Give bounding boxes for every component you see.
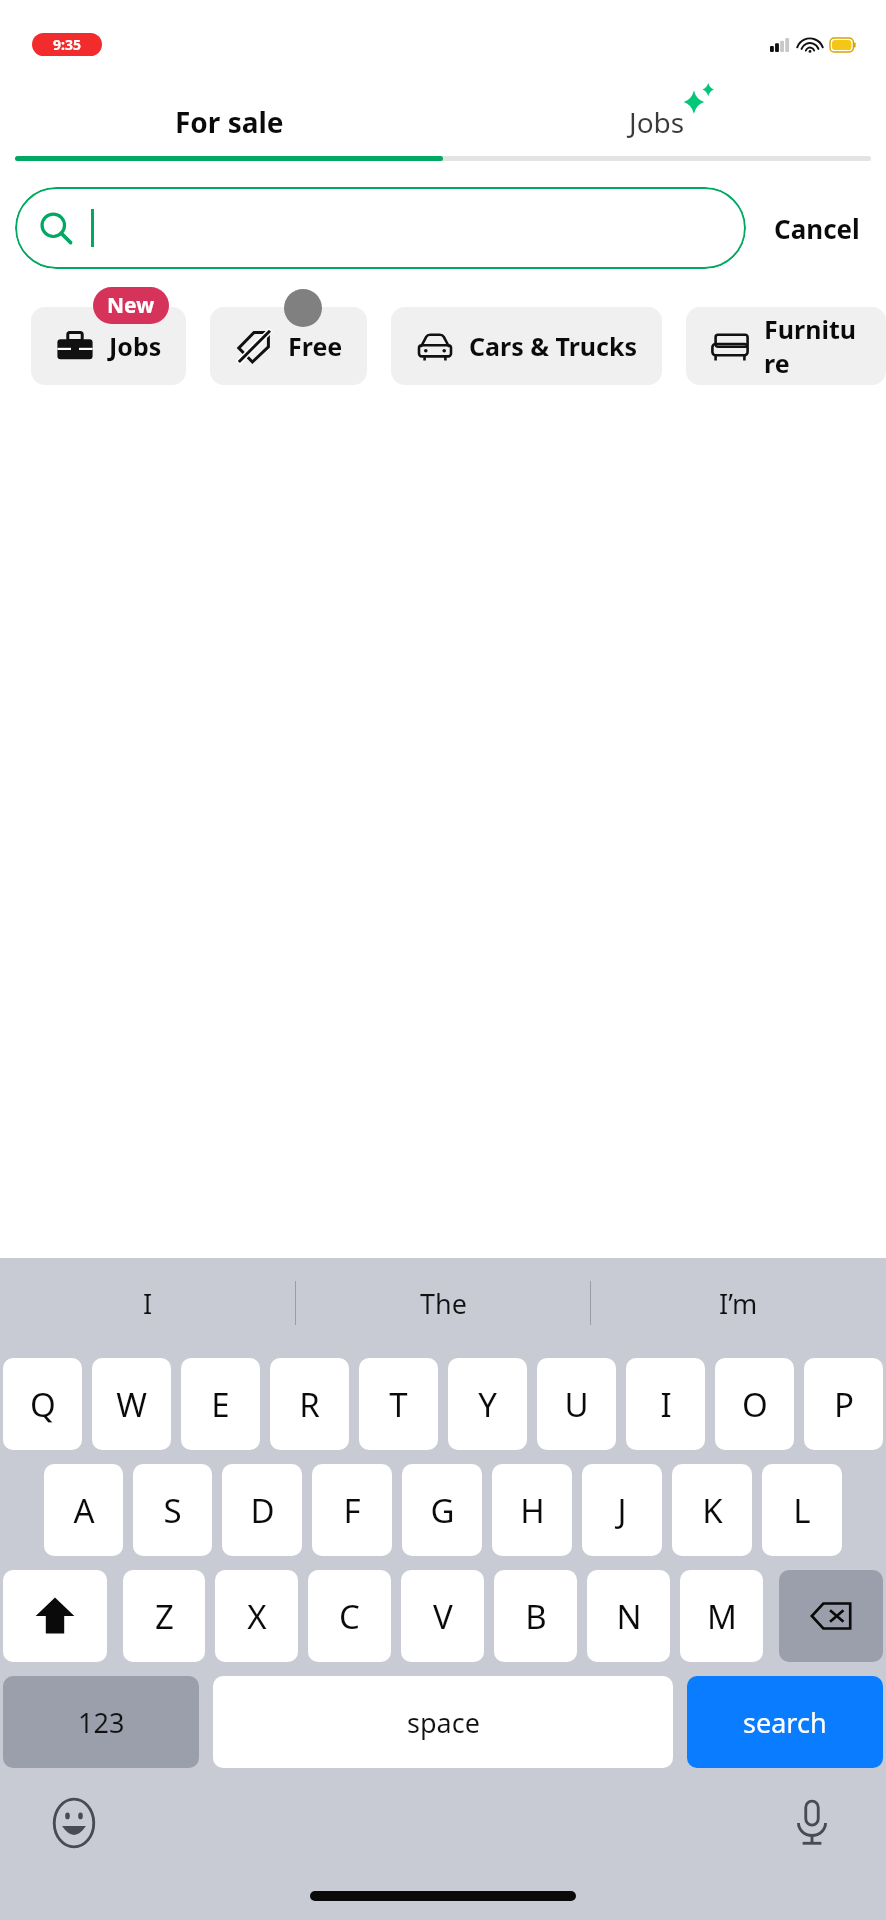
button[interactable]: 123 bbox=[3, 1676, 199, 1768]
staticText: K bbox=[702, 1488, 723, 1533]
staticText: T bbox=[389, 1382, 408, 1427]
button[interactable]: P bbox=[804, 1358, 883, 1450]
button[interactable]: space bbox=[213, 1676, 673, 1768]
button[interactable]: K bbox=[672, 1464, 752, 1556]
staticText: V bbox=[433, 1594, 453, 1639]
staticText: M bbox=[707, 1594, 737, 1639]
staticText: S bbox=[163, 1488, 182, 1533]
button[interactable]: T bbox=[359, 1358, 438, 1450]
staticText: A bbox=[73, 1488, 95, 1533]
staticText: Q bbox=[30, 1382, 56, 1427]
staticText: C bbox=[339, 1594, 360, 1639]
button[interactable]: Furniture bbox=[686, 307, 886, 385]
staticText: The bbox=[420, 1285, 467, 1322]
button[interactable]: L bbox=[762, 1464, 842, 1556]
button[interactable]: Jobs bbox=[31, 307, 186, 385]
button[interactable]: The bbox=[296, 1258, 591, 1348]
staticText: L bbox=[793, 1488, 811, 1533]
button[interactable]: O bbox=[715, 1358, 794, 1450]
staticText: space bbox=[407, 1704, 480, 1741]
button[interactable]: Cars & Trucks bbox=[391, 307, 662, 385]
button[interactable]: U bbox=[537, 1358, 616, 1450]
button[interactable]: Q bbox=[3, 1358, 82, 1450]
staticText: I’m bbox=[719, 1285, 758, 1322]
button[interactable]: N bbox=[587, 1570, 670, 1662]
button[interactable]: Y bbox=[448, 1358, 527, 1450]
staticText: Y bbox=[478, 1382, 497, 1427]
button[interactable]: C bbox=[308, 1570, 391, 1662]
button[interactable]: Emoji bbox=[46, 1795, 102, 1851]
button[interactable]: F bbox=[312, 1464, 392, 1556]
staticText: Jobs bbox=[629, 103, 685, 141]
staticText: Cancel bbox=[774, 211, 860, 246]
staticText: G bbox=[430, 1488, 455, 1533]
button[interactable]: W bbox=[92, 1358, 171, 1450]
button[interactable]: M bbox=[680, 1570, 763, 1662]
button[interactable]: For sale bbox=[15, 88, 443, 156]
button[interactable]: I bbox=[0, 1258, 296, 1348]
staticText: B bbox=[525, 1594, 547, 1639]
button[interactable]: D bbox=[222, 1464, 302, 1556]
staticText: E bbox=[211, 1382, 230, 1427]
button[interactable]: G bbox=[402, 1464, 482, 1556]
button[interactable]: I’m bbox=[591, 1258, 886, 1348]
staticText: Free bbox=[288, 329, 343, 363]
staticText: W bbox=[116, 1382, 147, 1427]
staticText: P bbox=[834, 1382, 854, 1427]
button[interactable]: Backspace bbox=[779, 1570, 883, 1662]
staticText: 123 bbox=[78, 1704, 125, 1741]
staticText: I bbox=[143, 1285, 153, 1322]
staticText: I bbox=[660, 1382, 672, 1427]
staticText: O bbox=[742, 1382, 768, 1427]
button[interactable]: Voice input bbox=[784, 1795, 840, 1851]
staticText: Furniture bbox=[764, 312, 862, 380]
button[interactable]: V bbox=[401, 1570, 484, 1662]
button[interactable]: A bbox=[44, 1464, 123, 1556]
staticText: D bbox=[250, 1488, 275, 1533]
button[interactable]: Cancel bbox=[770, 203, 864, 254]
staticText: U bbox=[564, 1382, 589, 1427]
staticText: For sale bbox=[175, 103, 284, 141]
staticText: Z bbox=[155, 1594, 174, 1639]
staticText: Cars & Trucks bbox=[469, 329, 638, 363]
button[interactable]: E bbox=[181, 1358, 260, 1450]
button[interactable]: I bbox=[626, 1358, 705, 1450]
button[interactable]: Shift bbox=[3, 1570, 107, 1662]
staticText: J bbox=[617, 1488, 627, 1533]
button[interactable]: search bbox=[687, 1676, 883, 1768]
button[interactable] bbox=[15, 187, 746, 269]
button[interactable]: B bbox=[494, 1570, 577, 1662]
button[interactable]: H bbox=[492, 1464, 572, 1556]
staticText: Jobs bbox=[109, 329, 162, 363]
staticText: N bbox=[616, 1594, 642, 1639]
staticText: F bbox=[343, 1488, 361, 1533]
staticText: X bbox=[247, 1594, 267, 1639]
button[interactable]: Jobs bbox=[443, 88, 871, 156]
staticText: New bbox=[107, 291, 155, 320]
button[interactable]: S bbox=[133, 1464, 212, 1556]
staticText: H bbox=[520, 1488, 545, 1533]
button[interactable]: Free bbox=[210, 307, 367, 385]
staticText: 9:35 bbox=[53, 35, 81, 54]
button[interactable]: Z bbox=[123, 1570, 205, 1662]
staticText: search bbox=[743, 1704, 827, 1741]
button[interactable]: R bbox=[270, 1358, 349, 1450]
button[interactable]: J bbox=[582, 1464, 662, 1556]
staticText: R bbox=[299, 1382, 320, 1427]
button[interactable]: X bbox=[215, 1570, 298, 1662]
